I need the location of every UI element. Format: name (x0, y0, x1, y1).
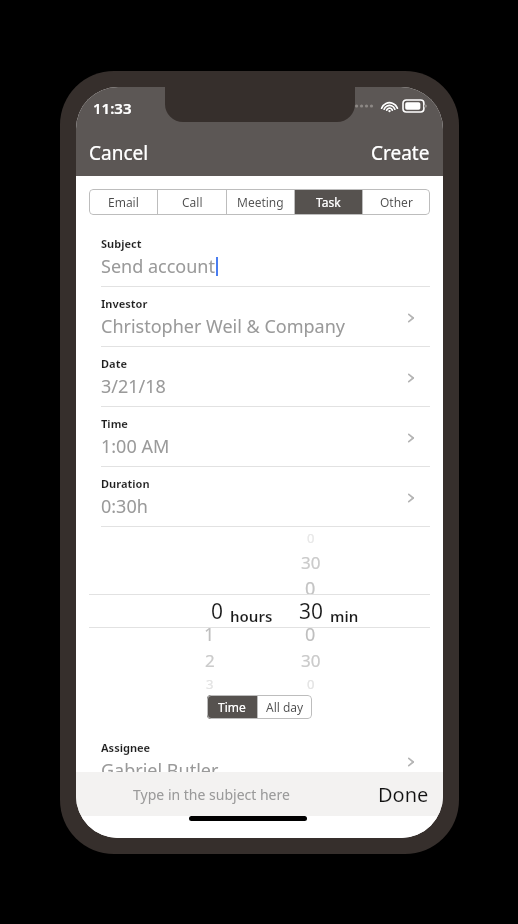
staticText: min (330, 606, 359, 626)
staticText: Send account (101, 254, 215, 279)
button[interactable]: Task (295, 189, 362, 215)
staticText: 0 (307, 529, 315, 547)
button[interactable]: Time (207, 695, 257, 719)
staticText: 3/21/18 (101, 374, 166, 399)
button[interactable]: Done (364, 775, 443, 814)
staticText: 0:30h (101, 494, 148, 519)
other: Open Duration (404, 491, 418, 505)
staticText: 0 (211, 597, 224, 626)
other: Open Time (404, 431, 418, 445)
button[interactable]: Time (89, 407, 430, 466)
staticText: Type in the subject here (133, 785, 290, 804)
staticText: Task (316, 194, 341, 210)
staticText: Cancel (89, 140, 149, 166)
staticText: 30 (301, 649, 321, 672)
staticText: Investor (101, 296, 148, 311)
staticText: Gabriel Butler (101, 758, 219, 783)
staticText: 0 (307, 675, 315, 693)
button[interactable]: Other (363, 189, 430, 215)
staticText: 1 (204, 622, 215, 647)
staticText: Create (371, 140, 430, 166)
staticText: 30 (299, 597, 324, 626)
staticText: All day (266, 699, 304, 715)
other: Open Assignee (404, 755, 418, 769)
button[interactable]: Meeting (227, 189, 294, 215)
staticText: 0 (305, 576, 316, 601)
button[interactable]: Investor (89, 287, 430, 346)
staticText: Email (108, 194, 139, 210)
staticText: Date (101, 356, 127, 371)
staticText: Assignee (101, 740, 151, 755)
button[interactable]: Email (89, 189, 157, 215)
staticText: Duration (101, 476, 150, 491)
button[interactable]: Cancel (76, 134, 159, 176)
staticText: Subject (101, 236, 142, 251)
button[interactable]: Assignee (89, 731, 430, 790)
other: Open Investor (404, 311, 418, 325)
button[interactable]: Call (158, 189, 226, 215)
staticText: Time (218, 699, 246, 715)
button[interactable]: Date (89, 347, 430, 406)
staticText: hours (230, 606, 273, 626)
staticText: Christopher Weil & Company (101, 314, 345, 339)
staticText: 30 (301, 551, 321, 574)
staticText: Meeting (237, 194, 284, 210)
staticText: 2 (205, 649, 215, 672)
staticText: 3 (206, 675, 214, 693)
button[interactable]: All day (258, 695, 312, 719)
staticText: 11:33 (93, 98, 132, 118)
button[interactable]: Duration (89, 467, 430, 526)
button[interactable]: Create (361, 134, 443, 176)
staticText: Time (101, 416, 128, 431)
staticText: 1:00 AM (101, 434, 170, 459)
staticText: Call (182, 194, 203, 210)
staticText: 0 (305, 622, 316, 647)
button[interactable]: Subject (89, 227, 430, 286)
other: Open Date (404, 371, 418, 385)
staticText: Done (378, 781, 429, 808)
staticText: Other (380, 194, 413, 210)
